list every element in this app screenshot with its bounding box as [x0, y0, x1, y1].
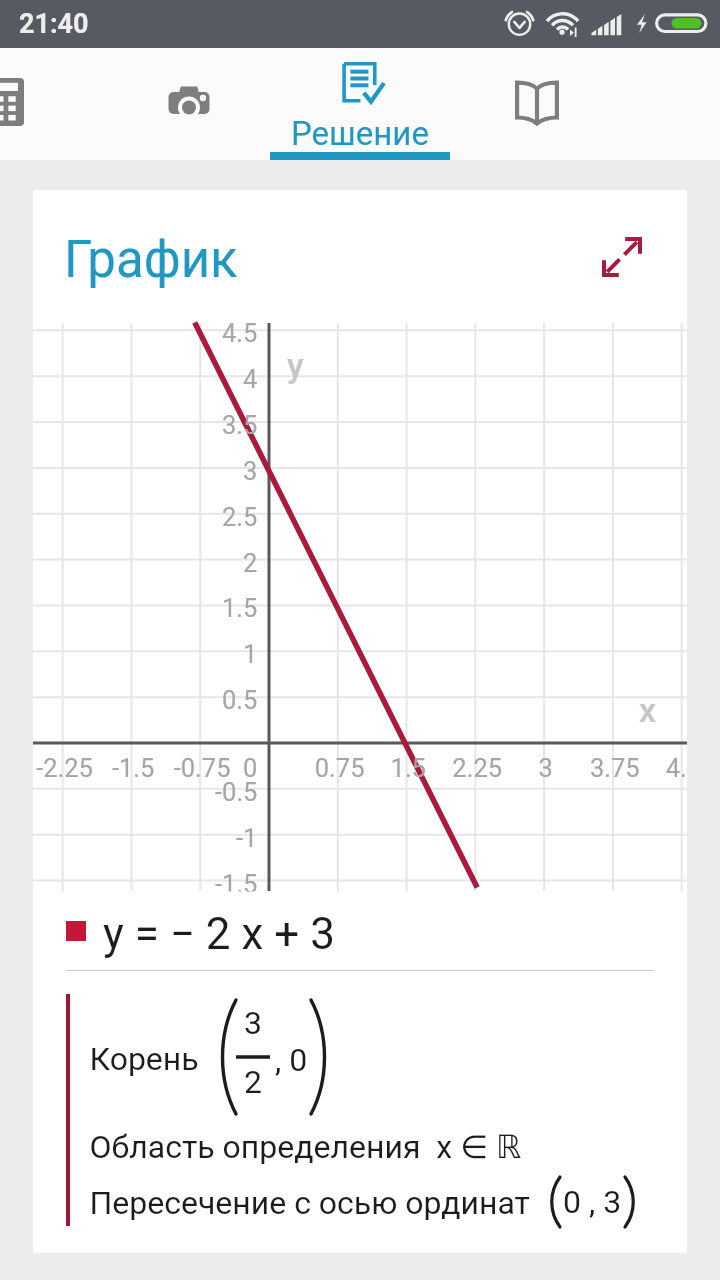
button[interactable]: Book	[449, 48, 625, 160]
staticText: y = − 2 x + 3	[103, 908, 335, 960]
staticText: График	[64, 230, 238, 290]
button[interactable]: Camera	[101, 48, 277, 160]
staticText: 21:40	[19, 8, 89, 40]
button[interactable]: Expand graph	[602, 237, 642, 277]
button[interactable]: Решение	[270, 48, 450, 160]
staticText: Решение	[291, 114, 429, 153]
button[interactable]: Calculator	[0, 48, 96, 160]
